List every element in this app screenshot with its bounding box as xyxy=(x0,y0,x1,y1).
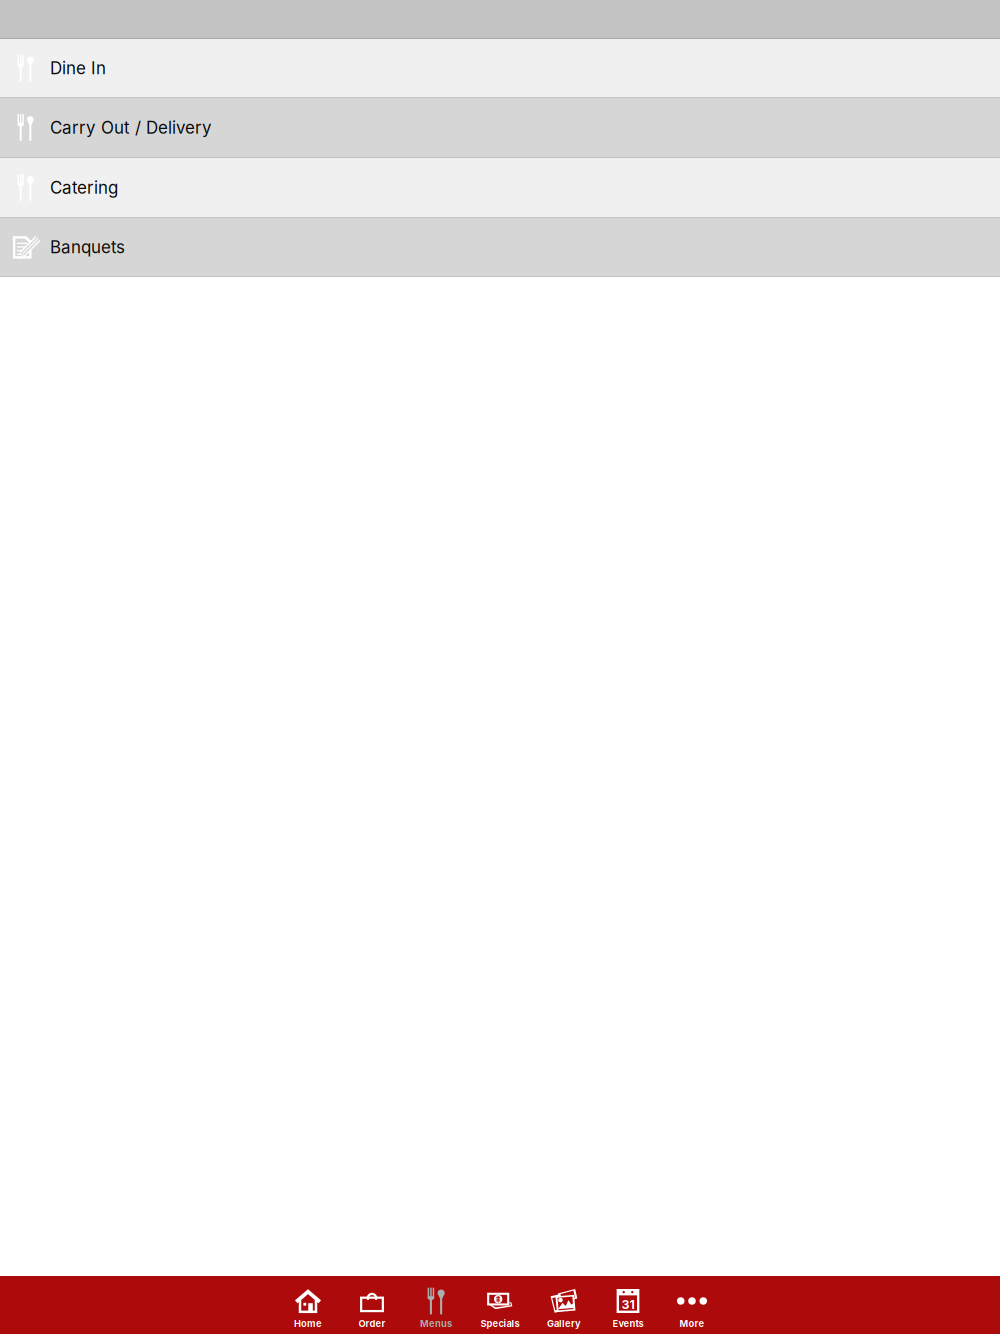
button[interactable]: Home xyxy=(276,1276,340,1334)
staticText: Specials xyxy=(480,1318,519,1329)
button[interactable]: Gallery xyxy=(532,1276,596,1334)
staticText: Banquets xyxy=(50,237,125,257)
staticText: Gallery xyxy=(547,1318,581,1329)
staticText: Events xyxy=(612,1318,643,1329)
button[interactable]: Specials xyxy=(468,1276,532,1334)
button[interactable]: Catering xyxy=(0,158,1000,218)
staticText: Carry Out / Delivery xyxy=(50,117,212,138)
button[interactable]: More xyxy=(660,1276,724,1334)
button[interactable]: Carry Out / Delivery xyxy=(0,98,1000,158)
staticText: Dine In xyxy=(50,58,106,78)
staticText: Catering xyxy=(50,177,118,198)
button[interactable]: Dine In xyxy=(0,39,1000,98)
staticText: 31 xyxy=(621,1297,634,1312)
button[interactable]: Banquets xyxy=(0,218,1000,277)
staticText: Menus xyxy=(420,1318,452,1329)
button[interactable]: Order xyxy=(340,1276,404,1334)
button[interactable]: 31 xyxy=(596,1276,660,1334)
staticText: Home xyxy=(294,1318,322,1329)
staticText: Order xyxy=(358,1318,385,1329)
staticText: More xyxy=(679,1318,704,1329)
button[interactable]: Menus xyxy=(404,1276,468,1334)
